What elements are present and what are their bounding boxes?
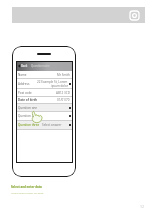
- staticText: Post code: [18, 91, 32, 95]
- staticText: 01/01/70: [57, 98, 70, 102]
- staticText: Back: [21, 64, 28, 68]
- button[interactable]: Question three: [18, 121, 71, 129]
- staticText: Question 2: [18, 114, 34, 118]
- button[interactable]: Back: [16, 61, 73, 71]
- staticText: 22 Example St, Lorem: [37, 80, 68, 84]
- staticText: Question one: [18, 106, 37, 110]
- button[interactable]: Question 2: [18, 112, 71, 120]
- button[interactable]: Address: [18, 79, 71, 88]
- staticText: Address: [18, 82, 30, 86]
- staticText: Mr Smith: [57, 73, 70, 77]
- staticText: Questionnaire: [31, 64, 50, 68]
- staticText: Date of birth: [18, 98, 38, 102]
- button[interactable]: Question one: [18, 104, 71, 111]
- staticText: ipsum dolor: [51, 84, 68, 88]
- staticText: Select answer: [42, 123, 62, 127]
- staticText: Select and enter data: [11, 185, 42, 189]
- staticText: AB12 3CD: [56, 91, 70, 95]
- staticText: 12: [140, 204, 145, 209]
- staticText: Question three: [18, 123, 40, 127]
- button[interactable]: Name: [18, 71, 70, 78]
- button[interactable]: Post code: [18, 89, 70, 96]
- other: Back: [17, 64, 21, 68]
- other: Image placeholder: [130, 11, 139, 20]
- staticText: Lorem ipsum dolor sit amet: [11, 191, 44, 194]
- button[interactable]: Date of birth: [18, 97, 70, 103]
- button[interactable]: Image placeholder: [12, 7, 145, 23]
- staticText: Name: [18, 73, 27, 77]
